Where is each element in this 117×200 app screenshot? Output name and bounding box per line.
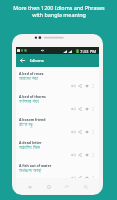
staticText: আরামের শয্যা [19,75,39,81]
staticText: with bangla meaning [32,11,86,18]
button[interactable]: Play pronunciation [70,129,75,134]
button[interactable]: Favorite [84,129,89,134]
button[interactable]: Back [16,54,29,67]
staticText: 7:33 PM [80,48,97,54]
button[interactable]: Share [77,106,82,111]
button[interactable]: Play pronunciation [70,83,75,88]
button[interactable]: Favorite [84,175,89,180]
button[interactable]: Recent apps [25,182,34,191]
staticText: A bosom friend [19,117,46,122]
button[interactable]: More options [90,175,95,180]
button[interactable]: Favorite [84,106,89,111]
staticText: More then 1200 Idioms and Phrases [13,4,105,11]
button[interactable]: Home [44,182,53,191]
button[interactable]: A bed of roses [16,67,99,90]
staticText: অপ্রচলিত নিয়ম [19,144,40,150]
button[interactable]: More options [90,129,95,134]
button[interactable]: Play pronunciation [70,152,75,157]
button[interactable]: Search [81,182,90,191]
button[interactable]: Favorite [84,152,89,157]
staticText: A bed of roses [19,71,44,76]
staticText: A bed of thorns [19,94,46,99]
button[interactable]: More options [90,106,95,111]
button[interactable]: Favorite [84,83,89,88]
button[interactable]: Play pronunciation [70,106,75,111]
staticText: Idioms [30,58,44,64]
button[interactable]: A dead letter [16,136,99,159]
staticText: A fish out of water [19,163,52,168]
button[interactable]: Share [77,129,82,134]
button[interactable]: More options [90,152,95,157]
button[interactable]: Play pronunciation [70,175,75,180]
button[interactable]: Back [62,182,71,191]
staticText: কণ্টকময় শয্যা [19,98,39,104]
button[interactable]: A fish out of water [16,159,99,178]
staticText: প্রাণের বন্ধু [19,121,33,127]
button[interactable]: Share [77,175,82,180]
button[interactable]: A bed of thorns [16,90,99,113]
staticText: অস্বাচ্ছন্দ্য অবস্থা [19,167,42,173]
button[interactable]: Share [77,83,82,88]
button[interactable]: More options [90,83,95,88]
staticText: A dead letter [19,140,42,145]
button[interactable]: Share [77,152,82,157]
button[interactable]: A bosom friend [16,113,99,136]
